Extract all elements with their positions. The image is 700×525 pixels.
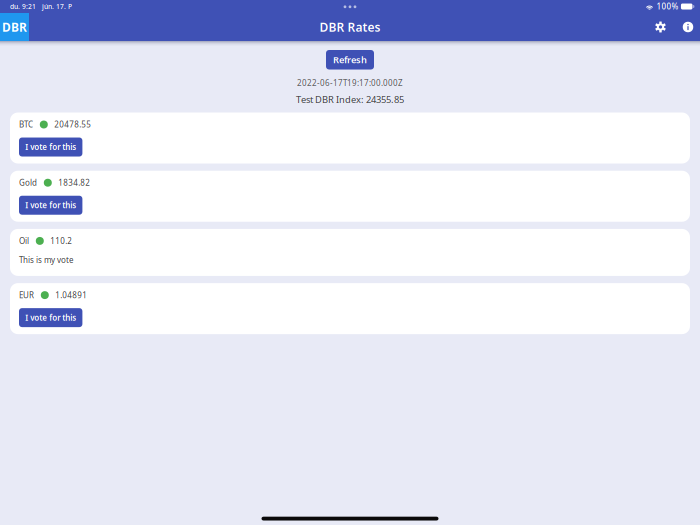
staticText: DBR: [2, 19, 27, 35]
staticText: This is my vote: [19, 255, 74, 265]
button[interactable]: I vote for this: [19, 196, 82, 215]
button[interactable]: I vote for this: [19, 137, 82, 156]
staticText: 1834.82: [58, 177, 90, 188]
staticText: Refresh: [333, 54, 367, 66]
button[interactable]: DBR: [0, 13, 29, 41]
staticText: 2022-06-17T19:17:00.000Z: [297, 77, 403, 88]
staticText: Test DBR Index: 24355.85: [296, 93, 404, 105]
staticText: I vote for this: [25, 312, 76, 323]
button[interactable]: Info: [681, 20, 695, 34]
button[interactable]: Settings: [653, 20, 667, 34]
staticText: EUR: [19, 290, 34, 300]
staticText: Oil: [19, 236, 29, 246]
staticText: 110.2: [50, 236, 72, 246]
staticText: I vote for this: [25, 200, 76, 210]
button[interactable]: I vote for this: [19, 308, 82, 327]
staticText: du. 9:21 jún. 17. P: [10, 2, 72, 11]
staticText: Gold: [19, 177, 37, 188]
staticText: 1.04891: [55, 290, 87, 300]
staticText: DBR Rates: [319, 19, 380, 35]
staticText: 100%: [656, 1, 678, 12]
staticText: BTC: [19, 119, 33, 130]
button[interactable]: Refresh: [326, 50, 374, 69]
staticText: 20478.55: [54, 119, 91, 130]
staticText: I vote for this: [25, 142, 76, 152]
